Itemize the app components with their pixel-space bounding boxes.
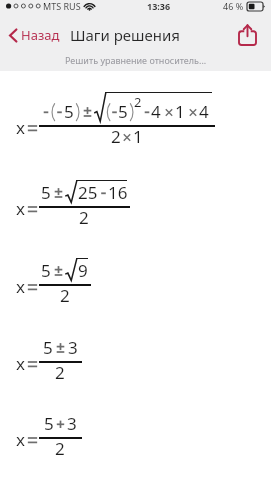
- staticText: 5: [118, 100, 128, 123]
- staticText: 3: [67, 412, 77, 435]
- staticText: x: [16, 275, 25, 298]
- staticText: 13:36: [147, 0, 171, 12]
- staticText: 2: [55, 361, 65, 384]
- staticText: 5: [44, 412, 54, 435]
- staticText: MTS RUS: [43, 0, 81, 12]
- staticText: Назад: [21, 26, 60, 44]
- staticText: x: [16, 197, 25, 220]
- staticText: 2: [79, 206, 89, 229]
- staticText: 46 %: [223, 0, 244, 12]
- staticText: 4: [199, 100, 209, 123]
- staticText: x: [16, 352, 25, 375]
- staticText: 1: [133, 125, 143, 148]
- staticText: 5: [41, 181, 51, 204]
- staticText: 5: [43, 336, 53, 359]
- button[interactable]: Назад: [5, 23, 64, 47]
- staticText: x: [16, 116, 25, 139]
- staticText: 2: [55, 437, 65, 460]
- staticText: 2: [60, 284, 70, 307]
- staticText: 25: [78, 181, 98, 204]
- staticText: 5: [64, 100, 74, 123]
- button[interactable]: Share: [233, 21, 261, 49]
- staticText: 16: [108, 181, 128, 204]
- staticText: Шаги решения: [70, 25, 180, 45]
- staticText: 2: [134, 93, 142, 111]
- staticText: 4: [151, 100, 161, 123]
- staticText: 3: [68, 336, 78, 359]
- staticText: x: [16, 428, 25, 451]
- staticText: 1: [175, 100, 185, 123]
- staticText: 5: [41, 259, 51, 282]
- staticText: 9: [78, 259, 88, 282]
- staticText: Решить уравнение относитель...: [65, 54, 207, 66]
- staticText: 2: [111, 125, 121, 148]
